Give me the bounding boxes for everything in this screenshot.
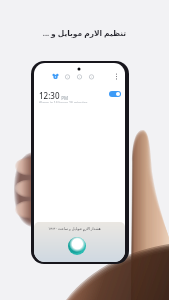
staticText: تنظیم الارم موبایل و ...: [0, 28, 169, 38]
button[interactable]: Alarm tab: [52, 73, 59, 80]
button[interactable]: هشدار الارم موبایل و ساعت ۱۳:۳۰: [34, 222, 125, 262]
button[interactable]: More options: [111, 71, 122, 82]
button[interactable]: Stopwatch tab: [88, 73, 95, 80]
staticText: 12:30: [39, 90, 60, 101]
button[interactable]: Timer tab: [76, 73, 83, 80]
staticText: هشدار الارم موبایل و ساعت ۱۳:۳۰: [34, 226, 120, 231]
button[interactable]: Assistant: [68, 237, 86, 255]
button[interactable]: Clock tab: [64, 73, 71, 80]
button[interactable]: Alarm toggle: [109, 91, 121, 97]
staticText: Alarm in 16 hours 16 minutes: [39, 100, 88, 103]
button[interactable]: 12:30: [34, 90, 125, 104]
staticText: PM: [60, 95, 69, 101]
